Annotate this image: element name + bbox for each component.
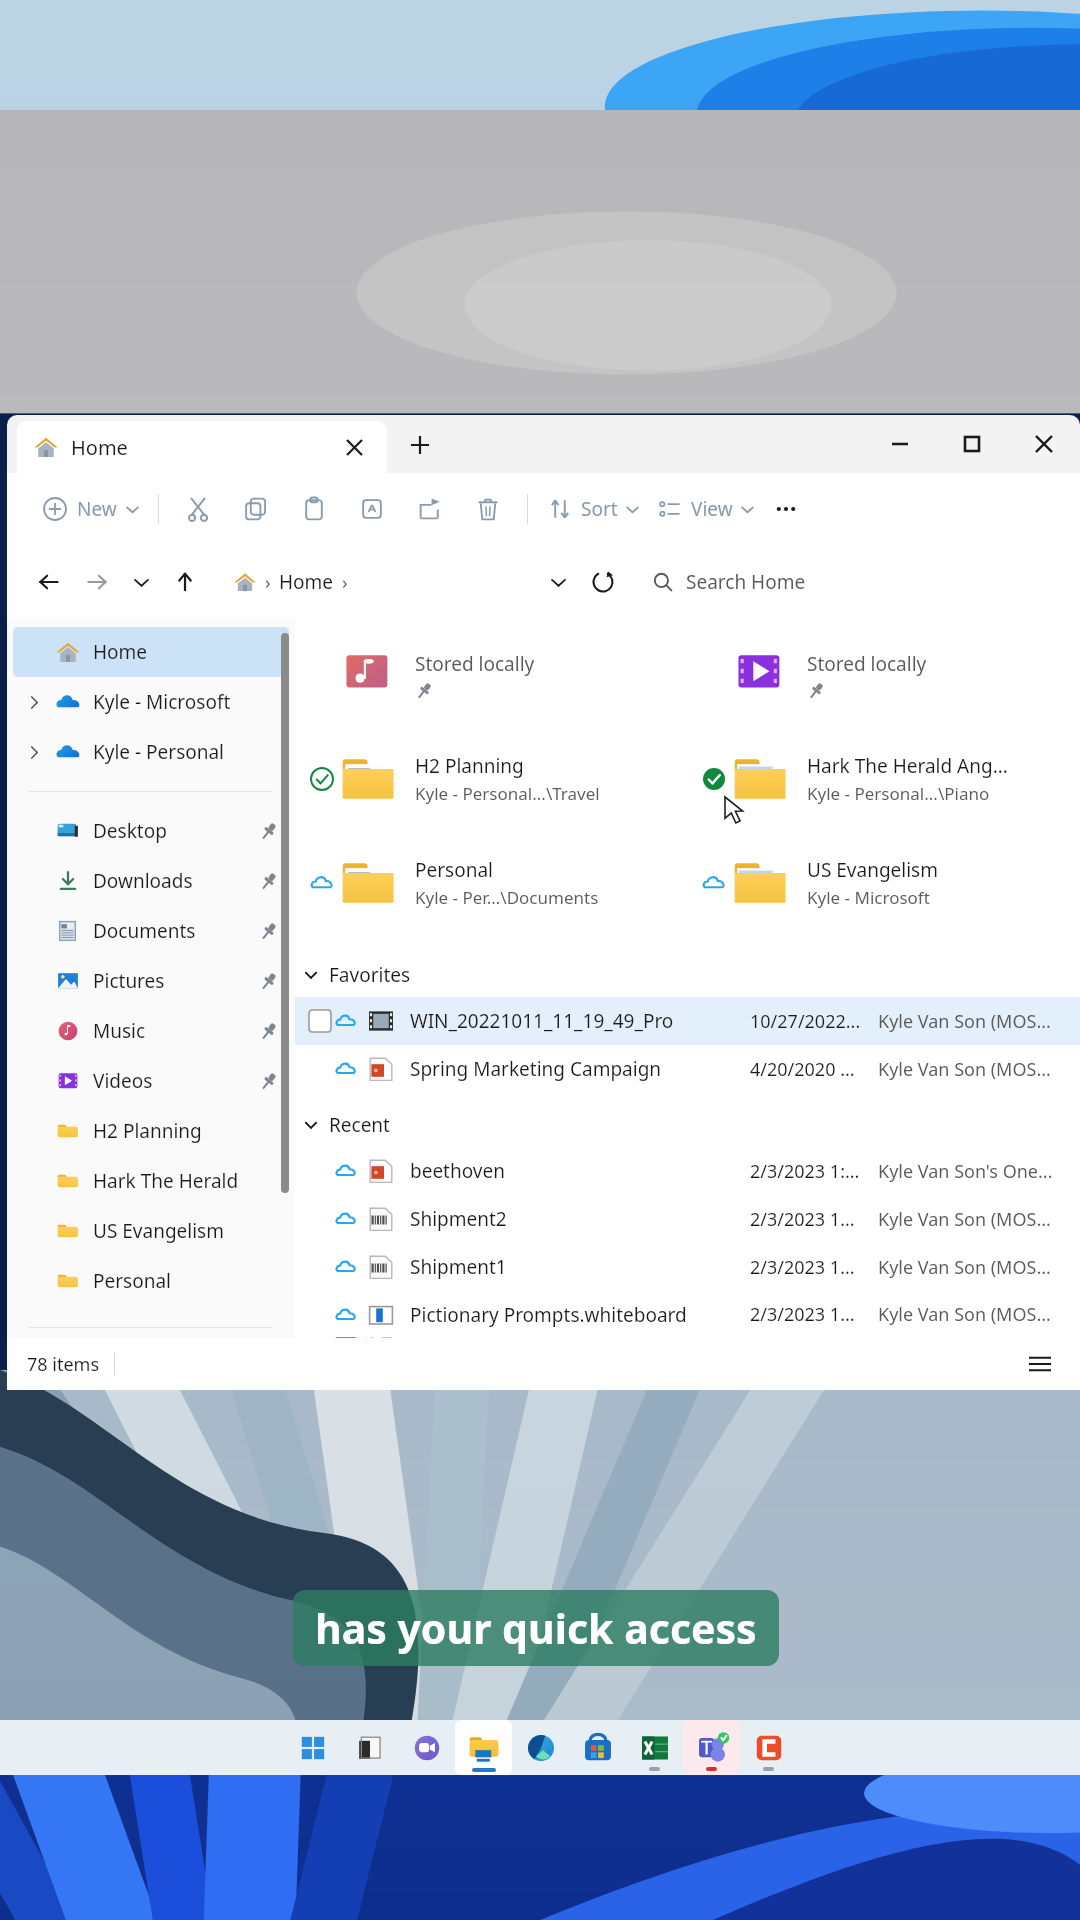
button[interactable]: H2 Planning — [301, 731, 681, 827]
button[interactable]: View — [648, 485, 763, 533]
staticText: has your quick access — [315, 1600, 757, 1656]
button[interactable]: File Explorer — [455, 1720, 512, 1775]
button[interactable]: Home — [17, 421, 387, 473]
button[interactable]: Minimize — [864, 415, 936, 473]
button[interactable]: Pictures — [13, 956, 289, 1006]
button[interactable]: Widgets — [341, 1720, 398, 1775]
button[interactable]: Back — [25, 558, 73, 606]
button[interactable]: Recent locations — [121, 562, 161, 602]
staticText: WIN_20221011_11_19_49_Pro — [410, 1008, 750, 1034]
button[interactable]: Close — [1008, 415, 1080, 473]
staticText: Documents — [93, 918, 259, 944]
button[interactable]: Forward — [73, 558, 121, 606]
button[interactable]: Close tab — [337, 430, 371, 464]
button[interactable]: Paste — [285, 480, 343, 538]
staticText: Kyle Van Son (MOS... — [878, 1057, 1076, 1082]
button[interactable]: Hark The Herald Ang... — [693, 731, 1074, 827]
staticText: Kyle Van Son (MOS... — [878, 1302, 1076, 1327]
staticText: › — [342, 570, 348, 595]
staticText: New — [77, 496, 117, 522]
button[interactable]: Kyle - Personal — [13, 727, 289, 777]
button[interactable]: Downloads — [13, 856, 289, 906]
button[interactable]: Start — [284, 1720, 341, 1775]
button[interactable]: Favorites — [295, 953, 1080, 997]
button[interactable]: Up — [161, 558, 209, 606]
button[interactable]: Pictionary Prompts.whiteboard — [295, 1291, 1080, 1338]
button[interactable]: See more — [763, 486, 809, 532]
button[interactable]: Videos — [13, 1056, 289, 1106]
staticText: › — [265, 570, 271, 595]
staticText: Kyle - Per...\Documents — [415, 886, 599, 909]
button[interactable]: US Evangelism — [693, 835, 1074, 931]
staticText: Search Home — [686, 569, 806, 595]
button[interactable]: Desktop — [13, 806, 289, 856]
button[interactable]: Personal — [301, 835, 681, 931]
staticText: Hark The Herald Ang... — [807, 753, 1008, 779]
button[interactable]: Home — [13, 627, 289, 677]
button[interactable]: Copy — [227, 480, 285, 538]
button[interactable]: H2 Planning — [13, 1106, 289, 1156]
staticText: Pictures — [93, 968, 259, 994]
button[interactable]: Hark The Herald Angels — [13, 1156, 289, 1206]
staticText: Desktop — [93, 818, 259, 844]
staticText: Stored locally — [415, 651, 535, 677]
button[interactable]: Details view — [1020, 1344, 1060, 1384]
staticText: Home — [279, 569, 334, 595]
button[interactable]: › — [219, 556, 579, 608]
staticText: Spring Marketing Campaign — [410, 1056, 750, 1082]
button[interactable]: Sort — [538, 485, 648, 533]
staticText: Personal — [93, 1268, 279, 1294]
staticText: Shipment2 — [410, 1206, 750, 1232]
button[interactable]: Chat — [398, 1720, 455, 1775]
staticText: Pictionary Prompts.whiteboard — [410, 1302, 750, 1328]
button[interactable]: US Evangelism — [13, 1206, 289, 1256]
button[interactable]: Teams — [683, 1720, 740, 1775]
staticText: Kyle - Personal...\Travel — [415, 782, 600, 805]
button[interactable]: Recent — [295, 1103, 1080, 1147]
staticText: Downloads — [93, 868, 259, 894]
staticText: Favorites — [329, 962, 411, 988]
button[interactable]: Music — [13, 1006, 289, 1056]
staticText: Kyle - Microsoft — [93, 689, 279, 715]
staticText: Videos — [93, 1068, 259, 1094]
button[interactable]: New tab — [401, 426, 439, 464]
staticText: Kyle Van Son (MOS... — [878, 1207, 1076, 1232]
staticText: 4/20/2020 ... — [750, 1057, 878, 1082]
staticText: 2/3/2023 1... — [750, 1207, 878, 1232]
button[interactable]: Documents — [13, 906, 289, 956]
button[interactable]: New — [33, 485, 148, 533]
button[interactable]: Edge — [512, 1720, 569, 1775]
button[interactable]: beethoven — [295, 1147, 1080, 1195]
staticText: Kyle - Personal — [93, 739, 279, 765]
button[interactable]: Microsoft Store — [569, 1720, 626, 1775]
button[interactable]: Excel — [626, 1720, 683, 1775]
button[interactable]: Shipment2 — [295, 1195, 1080, 1243]
staticText: Kyle - Personal...\Piano — [807, 782, 990, 805]
button[interactable]: Share — [401, 480, 459, 538]
button[interactable]: Search Home — [637, 556, 1062, 608]
button[interactable]: Shipment1 — [295, 1243, 1080, 1291]
staticText: Shipment1 — [410, 1254, 750, 1280]
staticText: Recent — [329, 1112, 390, 1138]
staticText: 2/3/2023 1... — [750, 1302, 878, 1327]
button[interactable]: WIN_20221011_11_19_49_Pro — [295, 997, 1080, 1045]
button[interactable]: Maximize — [936, 415, 1008, 473]
button[interactable]: Rename — [343, 480, 401, 538]
button[interactable]: Stored locally — [301, 627, 681, 723]
button[interactable]: Stored locally — [693, 627, 1074, 723]
staticText: Kyle Van Son (MOS... — [878, 1009, 1076, 1034]
staticText: Hark The Herald Angels — [93, 1168, 279, 1194]
button[interactable]: Cut — [169, 480, 227, 538]
button[interactable]: Kyle - Microsoft — [13, 677, 289, 727]
staticText: 10/27/2022... — [750, 1009, 878, 1034]
staticText: Home — [71, 434, 128, 461]
staticText: H2 Planning — [415, 753, 524, 779]
button[interactable]: Delete — [459, 480, 517, 538]
button[interactable]: Personal — [13, 1256, 289, 1306]
button[interactable]: Refresh — [579, 558, 627, 606]
staticText: Sort — [581, 496, 618, 522]
staticText: Personal — [415, 857, 493, 883]
button[interactable]: Spring Marketing Campaign — [295, 1045, 1080, 1093]
staticText: 2/3/2023 1:... — [750, 1159, 878, 1184]
button[interactable]: Camtasia — [740, 1720, 797, 1775]
